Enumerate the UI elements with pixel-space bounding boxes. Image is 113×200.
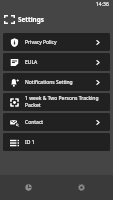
staticText: 1 week & Two Persons Tracking Packet (25, 95, 104, 109)
button[interactable]: History (2, 175, 55, 200)
staticText: ID 1 (25, 139, 35, 146)
staticText: Settings (18, 15, 44, 24)
button[interactable]: Notifications Setting (3, 73, 110, 91)
button[interactable]: 1 week & Two Persons Tracking Packet (3, 93, 110, 111)
staticText: Notifications Setting (25, 79, 73, 86)
button[interactable]: Privacy Policy (3, 33, 110, 51)
staticText: Privacy Policy (25, 39, 57, 46)
button[interactable]: Settings (55, 175, 108, 200)
staticText: EULA (25, 59, 38, 66)
button[interactable]: Back (0, 10, 18, 28)
button[interactable]: Contact (3, 113, 110, 131)
staticText: 14:36 (96, 1, 109, 8)
button[interactable]: EULA (3, 53, 110, 71)
staticText: Contact (25, 119, 44, 126)
button[interactable]: ID 1 (3, 133, 110, 151)
